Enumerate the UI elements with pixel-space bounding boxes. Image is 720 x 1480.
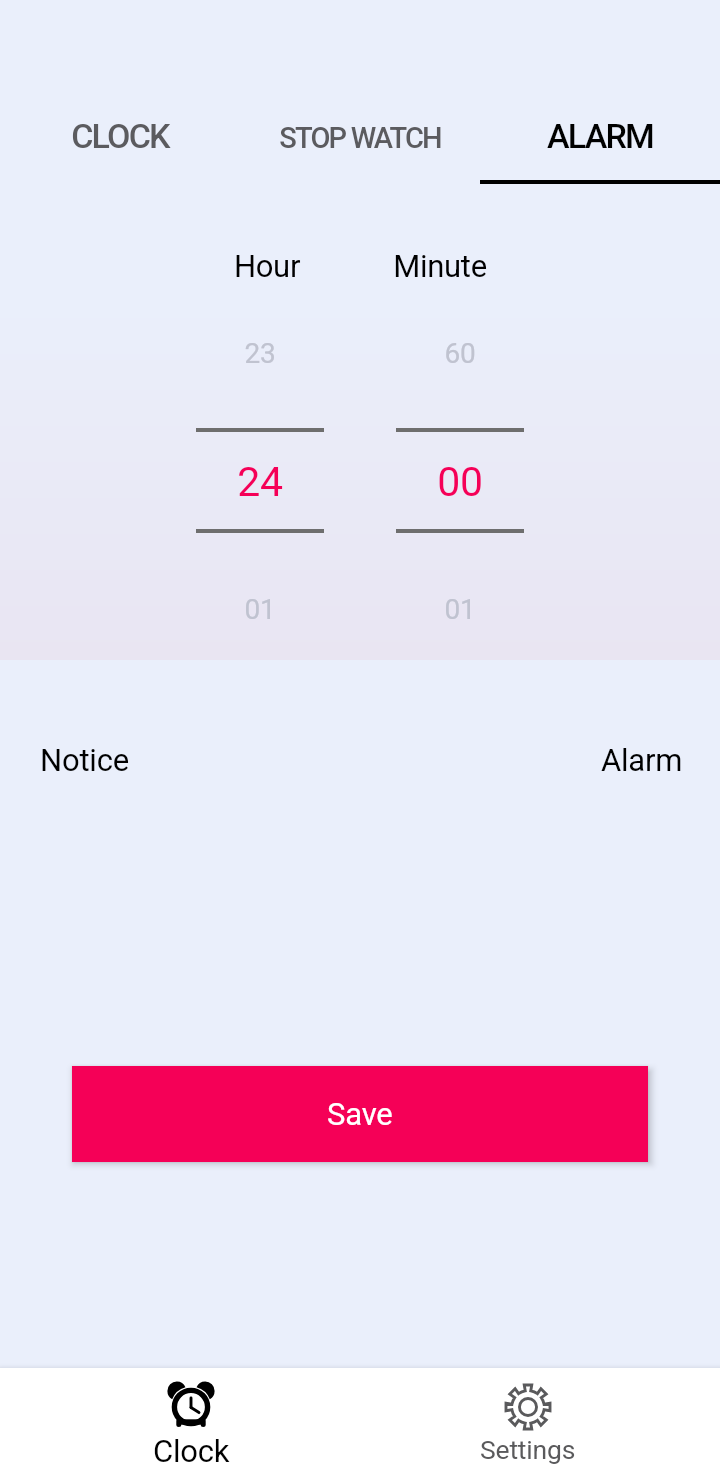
button[interactable]: Notice	[0, 700, 720, 820]
button[interactable]: 60	[360, 310, 560, 400]
staticText: 60	[360, 337, 560, 370]
other: Settings	[504, 1383, 552, 1431]
button[interactable]: ALARM	[480, 0, 720, 184]
button[interactable]: Clock	[101, 1368, 281, 1480]
button[interactable]: STOP WATCH	[240, 0, 480, 184]
button[interactable]: Save	[72, 1066, 648, 1162]
staticText: Clock	[153, 1433, 230, 1469]
button[interactable]: 01	[160, 566, 360, 656]
staticText: Settings	[480, 1434, 576, 1465]
button[interactable]: 00	[360, 420, 560, 540]
staticText: 01	[160, 593, 360, 626]
button[interactable]: 01	[360, 566, 560, 656]
staticText: 00	[360, 458, 560, 506]
staticText: 23	[160, 337, 360, 370]
staticText: Save	[327, 1096, 393, 1132]
staticText: CLOCK	[0, 116, 240, 156]
other: Clock	[167, 1380, 215, 1428]
staticText: Notice	[40, 742, 129, 778]
button[interactable]: Settings	[438, 1368, 618, 1480]
staticText: STOP WATCH	[240, 121, 480, 155]
button[interactable]: 24	[160, 420, 360, 540]
button[interactable]: 23	[160, 310, 360, 400]
staticText: 01	[360, 593, 560, 626]
staticText: ALARM	[480, 116, 720, 156]
button[interactable]: CLOCK	[0, 0, 240, 184]
staticText: Hour	[167, 248, 367, 284]
staticText: Alarm	[601, 742, 683, 778]
staticText: 24	[160, 458, 360, 506]
staticText: Minute	[340, 248, 540, 284]
